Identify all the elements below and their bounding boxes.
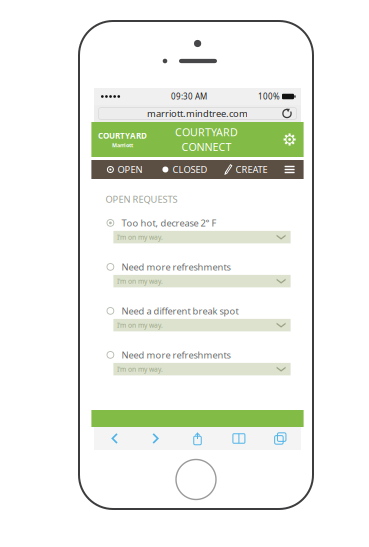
staticText: CONNECT: [181, 140, 231, 154]
staticText: I'm on my way.: [117, 277, 163, 286]
button[interactable]: Menu: [276, 160, 304, 179]
staticText: OPEN REQUESTS: [105, 193, 177, 205]
button[interactable]: Share: [177, 427, 218, 450]
staticText: COURTYARD: [98, 130, 147, 141]
button[interactable]: Forward: [135, 427, 177, 450]
staticText: CREATE: [236, 163, 268, 176]
staticText: OPEN: [117, 163, 142, 176]
button[interactable]: Tabs: [260, 427, 301, 450]
staticText: Need more refreshments: [121, 261, 230, 273]
staticText: 09:30 AM: [171, 91, 207, 102]
staticText: Marriott: [112, 141, 133, 149]
staticText: Too hot, decrease 2° F: [121, 217, 216, 229]
staticText: I'm on my way.: [117, 233, 163, 242]
staticText: CLOSED: [172, 163, 207, 176]
button[interactable]: CREATE: [216, 160, 276, 179]
button[interactable]: CLOSED: [153, 160, 216, 179]
button[interactable]: Need more refreshments: [105, 350, 291, 375]
staticText: COURTYARD: [175, 125, 238, 139]
button[interactable]: Too hot, decrease 2° F: [105, 218, 291, 243]
button[interactable]: Reload: [280, 106, 294, 120]
staticText: Need more refreshments: [121, 349, 230, 361]
button[interactable]: Need a different break spot: [105, 306, 291, 331]
staticText: I'm on my way.: [117, 321, 163, 330]
staticText: Need a different break spot: [121, 305, 238, 317]
button[interactable]: Bookmarks: [218, 427, 260, 450]
staticText: I'm on my way.: [117, 365, 163, 374]
button[interactable]: Back: [94, 427, 135, 450]
button[interactable]: Settings: [277, 126, 303, 152]
button[interactable]: Need more refreshments: [105, 262, 291, 287]
staticText: marriott.mindtree.com: [147, 107, 248, 120]
button[interactable]: OPEN: [91, 160, 153, 179]
staticText: 100%: [258, 91, 280, 102]
